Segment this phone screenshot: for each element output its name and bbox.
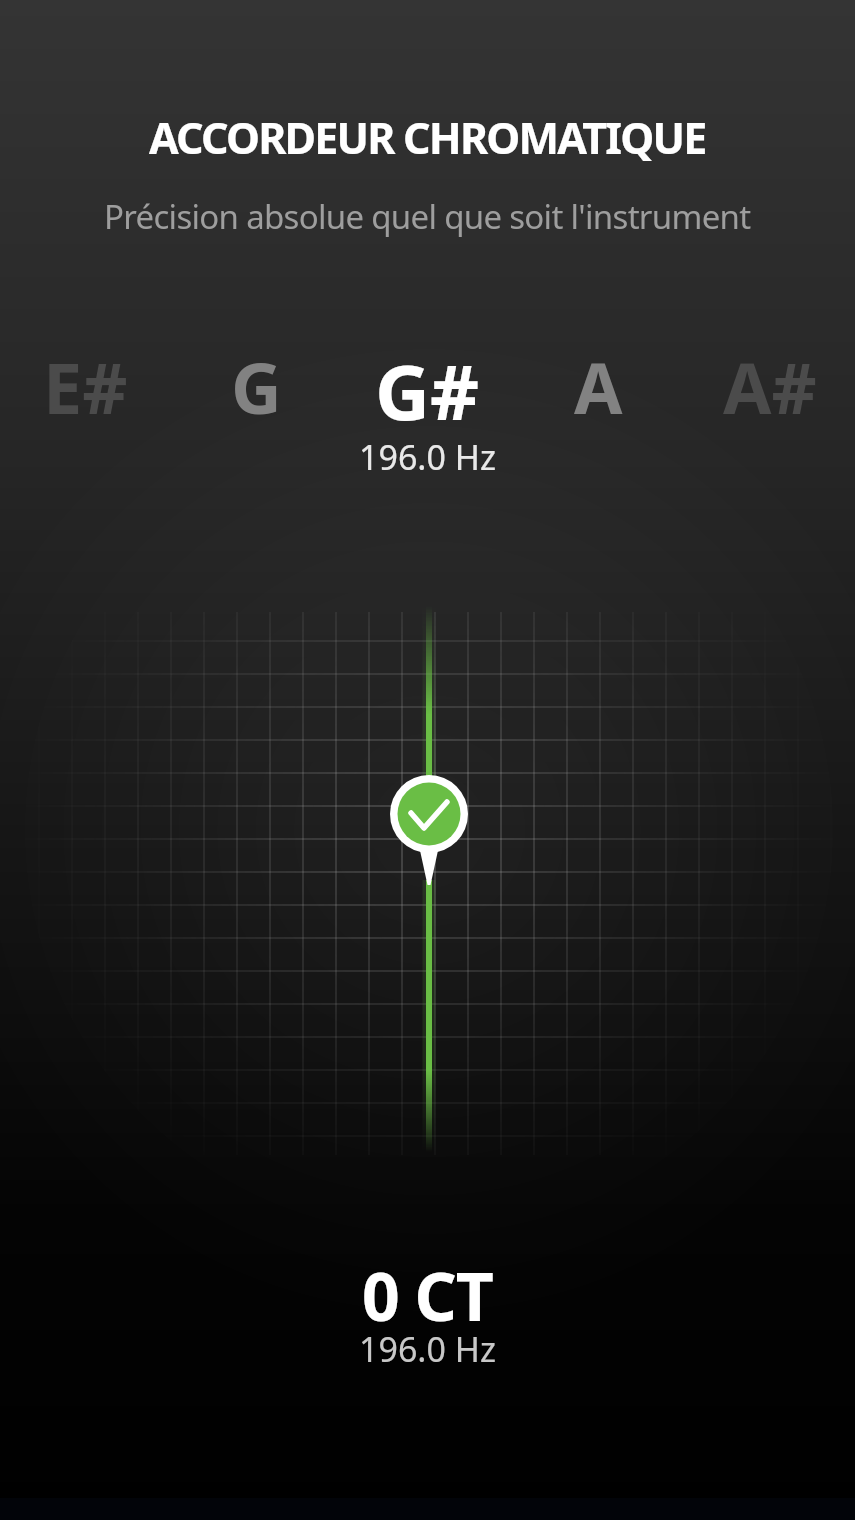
staticText: 196.0 Hz xyxy=(359,434,496,480)
button[interactable]: G# xyxy=(342,339,513,423)
staticText: E# xyxy=(43,339,128,423)
staticText: G# xyxy=(375,339,480,423)
staticText: 196.0 Hz xyxy=(359,1326,496,1372)
staticText: A# xyxy=(723,339,817,423)
button[interactable]: E# xyxy=(0,339,171,423)
staticText: A xyxy=(574,339,623,423)
button[interactable]: A xyxy=(513,339,684,423)
staticText: 0 CT xyxy=(362,1250,493,1340)
staticText: ACCORDEUR CHROMATIQUE xyxy=(149,108,706,167)
staticText: G xyxy=(231,339,282,423)
button[interactable]: G xyxy=(171,339,342,423)
button[interactable]: A# xyxy=(684,339,855,423)
staticText: Précision absolue quel que soit l'instru… xyxy=(104,194,751,239)
